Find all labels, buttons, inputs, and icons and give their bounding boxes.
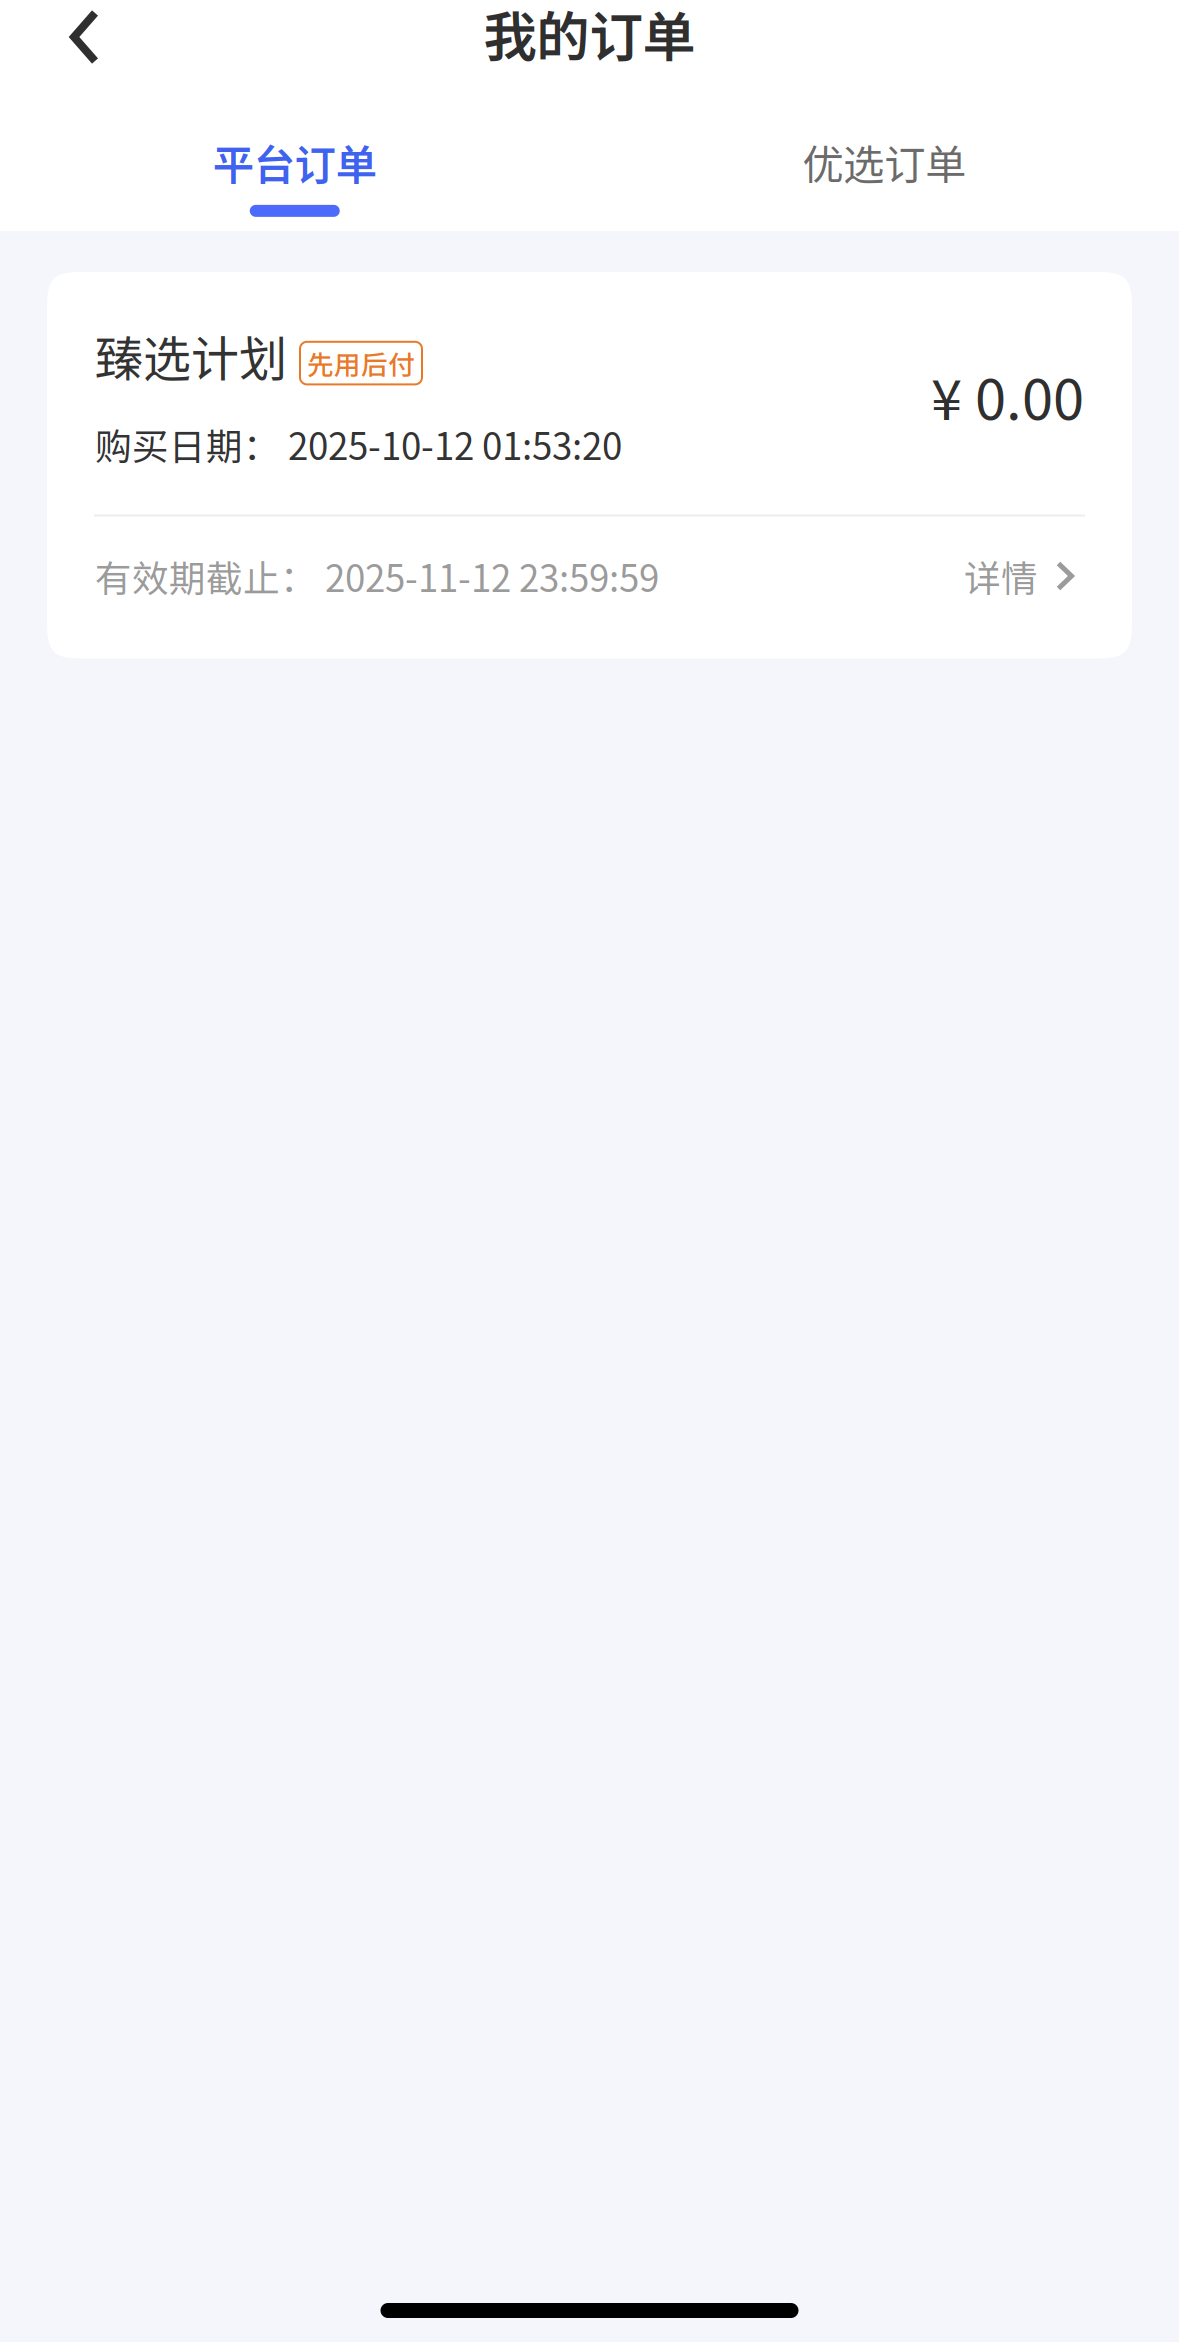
staticText: 平台订单 xyxy=(213,132,377,192)
staticText: 臻选计划 xyxy=(95,321,287,390)
staticText: 有效期截止： 2025-11-12 23:59:59 xyxy=(95,549,659,602)
button[interactable]: 臻选计划 xyxy=(47,272,1132,659)
button[interactable]: Back xyxy=(0,0,129,70)
button[interactable]: 平台订单 xyxy=(0,132,589,217)
button[interactable]: 优选订单 xyxy=(589,132,1179,217)
staticText: 详情 xyxy=(964,549,1038,602)
staticText: 优选订单 xyxy=(802,132,966,192)
staticText: ¥ 0.00 xyxy=(931,355,1084,436)
staticText: 购买日期： 2025-10-12 01:53:20 xyxy=(95,417,622,470)
staticText: 我的订单 xyxy=(483,0,695,72)
staticText: 先用后付 xyxy=(307,344,415,382)
